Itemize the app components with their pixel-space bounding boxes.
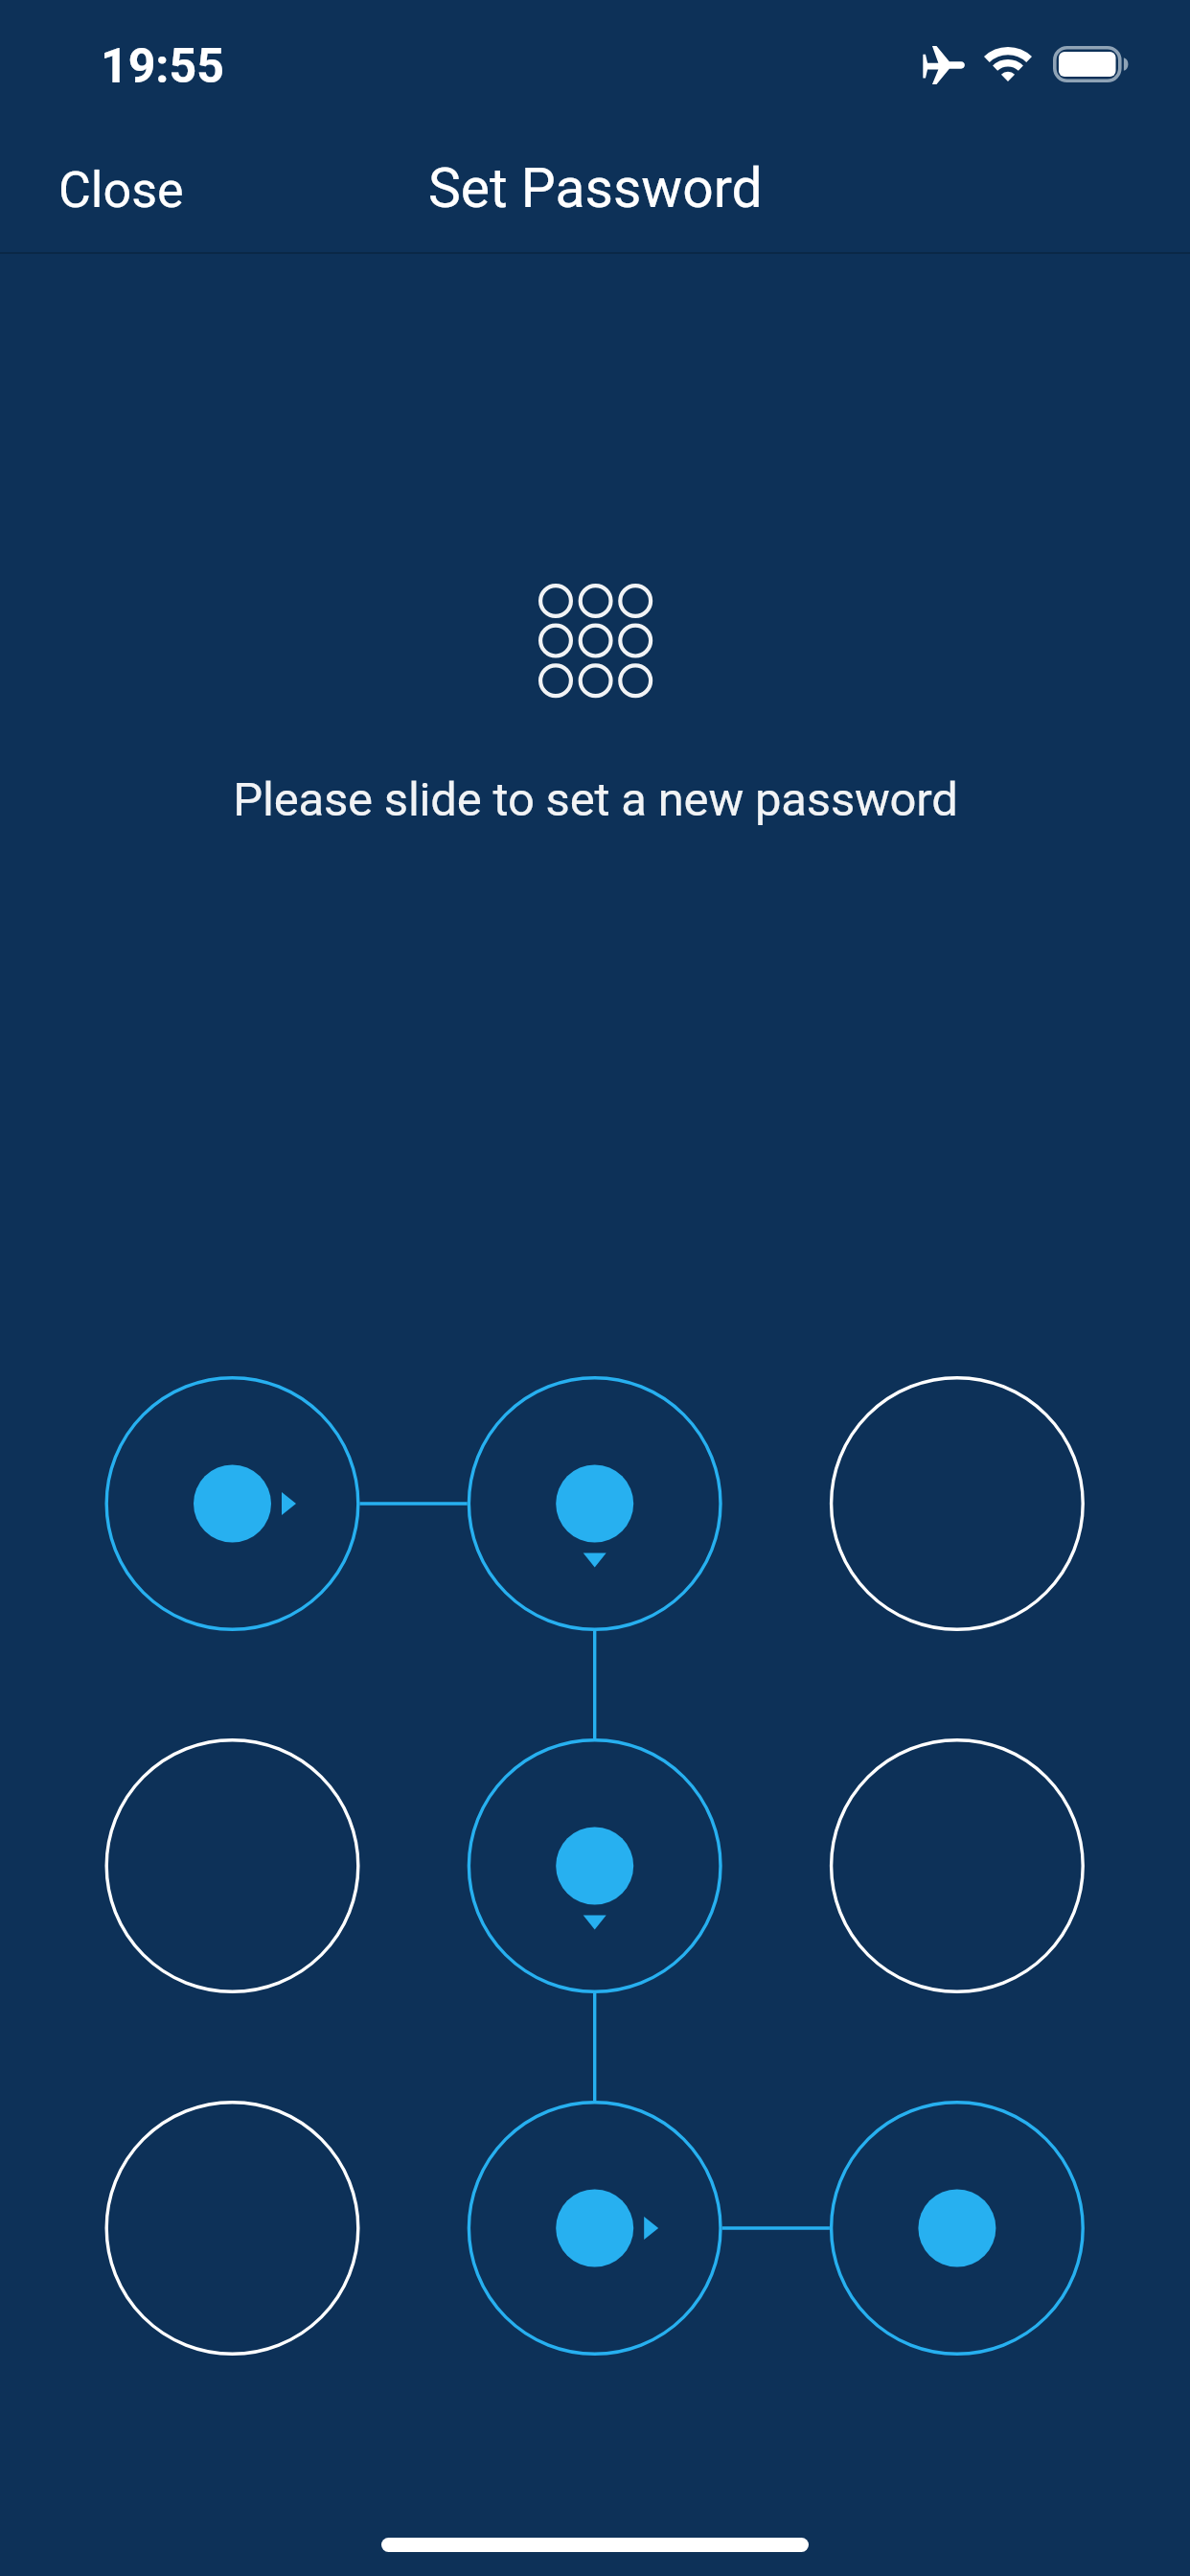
staticText: Close	[58, 161, 184, 219]
button[interactable]: Close	[20, 144, 222, 237]
button[interactable]: Pattern dot 5, selected	[468, 1738, 722, 1993]
button[interactable]: Pattern dot 1, selected	[105, 1376, 360, 1631]
staticText: Please slide to set a new password	[233, 772, 958, 827]
staticText: 19:55	[101, 38, 224, 95]
staticText: Set Password	[428, 156, 763, 220]
button[interactable]: Pattern dot 2, selected	[468, 1376, 722, 1631]
button[interactable]: Pattern dot 8, selected	[468, 2101, 722, 2356]
button[interactable]: Pattern dot 3	[830, 1376, 1085, 1631]
button[interactable]: Pattern dot 9, selected	[830, 2101, 1085, 2356]
button[interactable]: Pattern dot 7	[105, 2101, 360, 2356]
button[interactable]: Pattern dot 4	[105, 1738, 360, 1993]
button[interactable]: Pattern dot 6	[830, 1738, 1085, 1993]
